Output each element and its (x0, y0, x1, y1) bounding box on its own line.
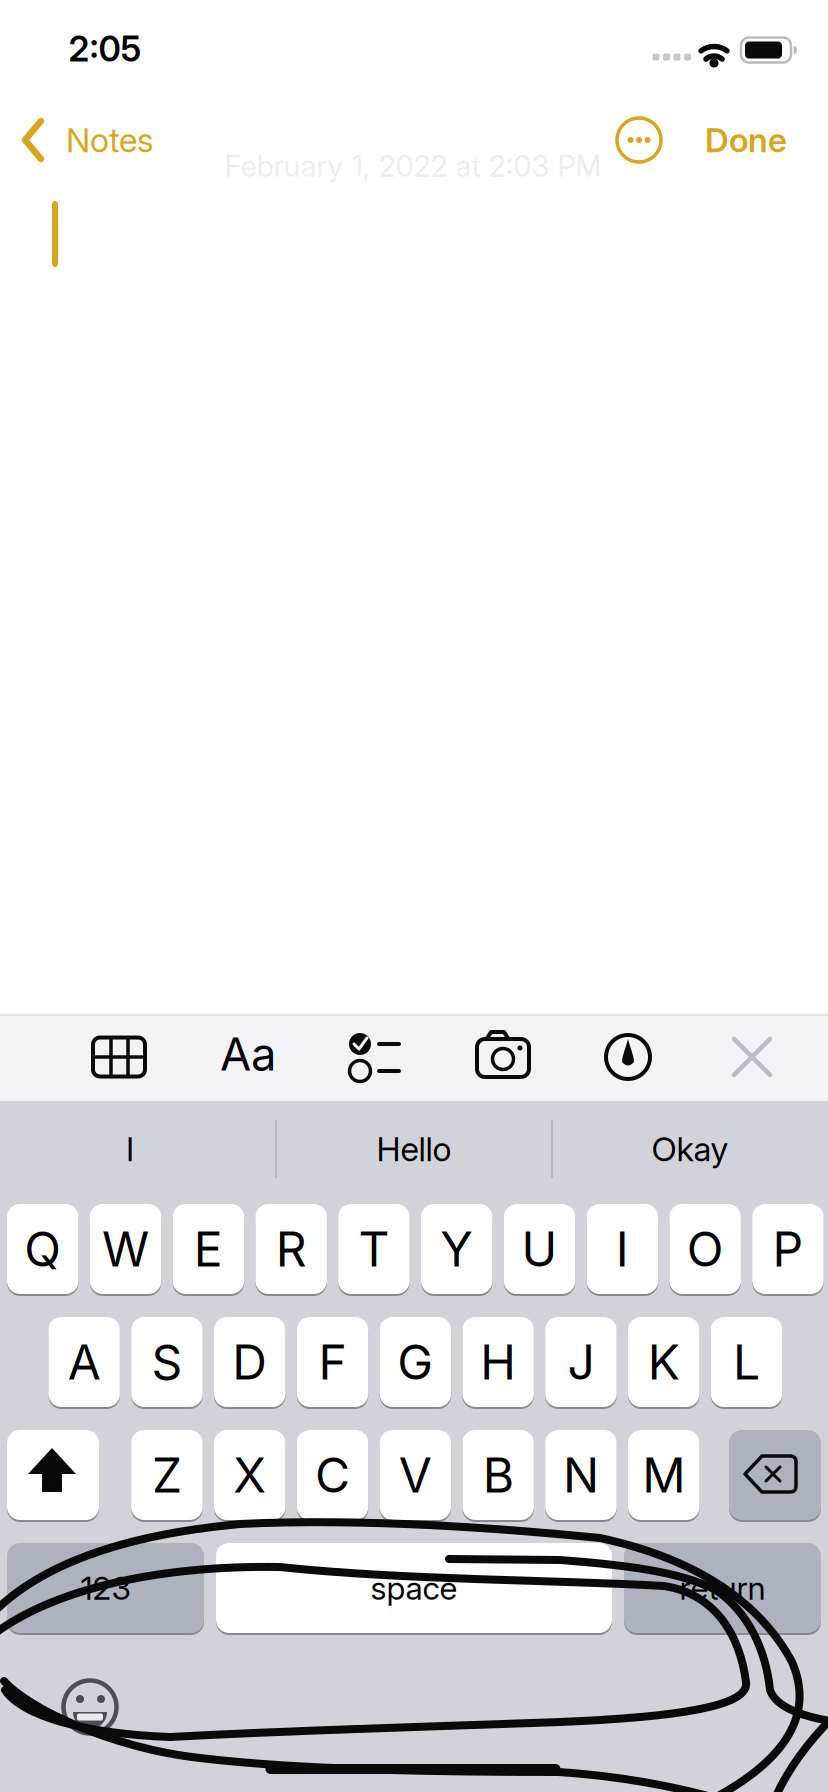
button[interactable]: Z (0, 0, 828, 1792)
staticText: V (399, 1447, 432, 1503)
button[interactable] (0, 0, 828, 1792)
staticText: Notes (66, 120, 154, 160)
button[interactable]: Done (0, 0, 828, 1792)
button[interactable]: K (0, 0, 828, 1792)
staticText: February 1, 2022 at 2:03 PM (224, 149, 601, 183)
button[interactable] (0, 0, 828, 1792)
button[interactable]: U (0, 0, 828, 1792)
staticText: M (642, 1447, 685, 1503)
staticText: L (733, 1334, 760, 1390)
button[interactable]: L (0, 0, 828, 1792)
button[interactable]: G (0, 0, 828, 1792)
staticText: 2:05 (68, 29, 141, 69)
staticText: Q (24, 1221, 61, 1277)
staticText: return (679, 1569, 765, 1607)
staticText: Done (705, 120, 787, 160)
staticText: D (232, 1334, 267, 1390)
staticText: Hello (376, 1129, 451, 1169)
staticText: G (397, 1334, 433, 1390)
button[interactable]: V (0, 0, 828, 1792)
button[interactable]: M (0, 0, 828, 1792)
button[interactable]: N (0, 0, 828, 1792)
staticText: N (563, 1447, 599, 1503)
button[interactable]: O (0, 0, 828, 1792)
staticText: O (687, 1221, 724, 1277)
button[interactable]: Y (0, 0, 828, 1792)
button[interactable]: H (0, 0, 828, 1792)
button[interactable]: C (0, 0, 828, 1792)
button[interactable]: T (0, 0, 828, 1792)
staticText: Okay (651, 1129, 728, 1169)
button[interactable]: return (0, 0, 828, 1792)
staticText: H (480, 1334, 516, 1390)
button[interactable]: 123 (0, 0, 828, 1792)
button[interactable] (0, 0, 828, 1792)
button[interactable] (0, 0, 828, 1792)
button[interactable]: F (0, 0, 828, 1792)
staticText: X (233, 1447, 266, 1503)
button[interactable]: X (0, 0, 828, 1792)
button[interactable]: B (0, 0, 828, 1792)
button[interactable]: Q (0, 0, 828, 1792)
button[interactable]: I (0, 0, 828, 1792)
staticText: B (483, 1447, 514, 1503)
button[interactable]: D (0, 0, 828, 1792)
button[interactable] (0, 0, 828, 1792)
button[interactable] (0, 0, 828, 1792)
staticText: Y (440, 1221, 473, 1277)
button[interactable]: P (0, 0, 828, 1792)
staticText: E (194, 1221, 223, 1277)
button[interactable]: J (0, 0, 828, 1792)
staticText: J (567, 1334, 594, 1390)
button[interactable]: Aa (0, 0, 828, 1792)
staticText: S (151, 1334, 182, 1390)
button[interactable]: Hello (0, 0, 828, 1792)
button[interactable]: W (0, 0, 828, 1792)
staticText: K (648, 1334, 680, 1390)
staticText: R (276, 1221, 307, 1277)
staticText: U (521, 1221, 557, 1277)
staticText: I (616, 1221, 629, 1277)
button[interactable]: Okay (0, 0, 828, 1792)
button[interactable]: A (0, 0, 828, 1792)
staticText: C (315, 1447, 350, 1503)
button[interactable]: space (0, 0, 828, 1792)
staticText: Z (152, 1447, 182, 1503)
button[interactable]: R (0, 0, 828, 1792)
staticText: F (318, 1334, 346, 1390)
button[interactable] (0, 0, 828, 1792)
staticText: space (370, 1569, 457, 1607)
button[interactable]: I (0, 0, 828, 1792)
staticText: I (126, 1129, 134, 1169)
staticText: 123 (80, 1569, 130, 1607)
staticText: A (68, 1334, 101, 1390)
staticText: W (102, 1221, 149, 1277)
button[interactable]: Notes (0, 0, 828, 1792)
staticText: P (772, 1221, 803, 1277)
button[interactable]: S (0, 0, 828, 1792)
button[interactable] (0, 0, 828, 1792)
staticText: Aa (220, 1027, 276, 1081)
button[interactable]: E (0, 0, 828, 1792)
staticText: T (358, 1221, 389, 1277)
button[interactable] (0, 0, 828, 1792)
